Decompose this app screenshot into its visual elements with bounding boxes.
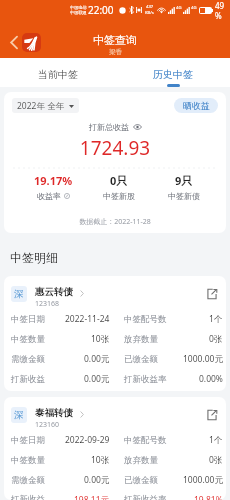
staticText: 0.00% bbox=[199, 373, 223, 385]
staticText: 123160 bbox=[35, 420, 60, 430]
staticText: 中签数量 bbox=[11, 334, 45, 345]
staticText: 中签日期 bbox=[11, 435, 45, 446]
staticText: 打新收益率 bbox=[124, 374, 167, 385]
staticText: 深 bbox=[14, 409, 24, 421]
staticText: 198.11元 bbox=[74, 494, 110, 500]
staticText: 已缴金额 bbox=[124, 475, 158, 486]
staticText: 收益率 bbox=[37, 191, 61, 201]
staticText: 中签新债 bbox=[168, 191, 200, 201]
staticText: 中签新股 bbox=[103, 191, 135, 201]
staticText: 10张 bbox=[91, 454, 110, 466]
staticText: 0.00元 bbox=[84, 373, 110, 385]
staticText: 泰福转债 bbox=[35, 407, 73, 419]
staticText: 需缴金额 bbox=[11, 475, 45, 486]
staticText: 中签数量 bbox=[11, 455, 45, 466]
staticText: 437 bbox=[146, 4, 154, 10]
staticText: 4G bbox=[191, 5, 197, 11]
staticText: KB/s bbox=[145, 10, 154, 16]
button[interactable]: 2022年 全年 bbox=[12, 98, 79, 113]
button[interactable]: 深 bbox=[4, 276, 226, 391]
staticText: 1个 bbox=[209, 434, 223, 446]
button[interactable]: Open detail bbox=[205, 408, 219, 422]
button[interactable]: Back bbox=[5, 34, 22, 51]
staticText: 中签日期 bbox=[11, 314, 45, 325]
staticText: 1000.00元 bbox=[183, 474, 223, 486]
staticText: 4G bbox=[176, 5, 182, 11]
staticText: 2022年 全年 bbox=[17, 100, 65, 112]
staticText: 0张 bbox=[209, 333, 223, 345]
staticText: 打新收益 bbox=[11, 374, 45, 385]
staticText: 49% bbox=[215, 0, 226, 20]
staticText: 19.17% bbox=[34, 173, 73, 188]
staticText: 0.00元 bbox=[84, 474, 110, 486]
staticText: 数据截止：2022-11-28 bbox=[4, 217, 226, 227]
staticText: 22:00 bbox=[88, 3, 114, 17]
button[interactable]: Open detail bbox=[205, 287, 219, 301]
staticText: 2022-11-24 bbox=[65, 313, 110, 325]
staticText: 打新收益 bbox=[11, 494, 45, 500]
staticText: 中国电信 bbox=[70, 5, 87, 10]
staticText: 梁香 bbox=[109, 48, 122, 56]
staticText: 0.00元 bbox=[84, 353, 110, 365]
staticText: 2022-09-29 bbox=[65, 434, 110, 446]
staticText: 打新收益率 bbox=[124, 494, 167, 500]
staticText: 中签配号数 bbox=[124, 314, 167, 325]
button[interactable]: 历史中签 bbox=[115, 58, 230, 87]
staticText: 打新总收益 bbox=[89, 122, 129, 132]
staticText: 当前中签 bbox=[38, 68, 78, 81]
staticText: 9只 bbox=[175, 173, 193, 188]
staticText: 历史中签 bbox=[153, 68, 193, 81]
staticText: 中国联通 bbox=[70, 10, 87, 15]
staticText: 深 bbox=[14, 288, 24, 300]
staticText: 晒收益 bbox=[183, 100, 210, 111]
staticText: 已缴金额 bbox=[124, 354, 158, 365]
staticText: 惠云转债 bbox=[35, 286, 73, 298]
staticText: 1个 bbox=[209, 313, 223, 325]
staticText: 放弃数量 bbox=[124, 455, 158, 466]
staticText: 19.81% bbox=[194, 494, 223, 500]
staticText: 123168 bbox=[35, 299, 60, 309]
staticText: 中签查询 bbox=[93, 33, 137, 47]
button[interactable]: 深 bbox=[4, 397, 226, 500]
button[interactable]: App logo bbox=[22, 33, 41, 52]
button[interactable]: 当前中签 bbox=[0, 58, 115, 87]
staticText: 0只 bbox=[110, 173, 128, 188]
staticText: 中签明细 bbox=[10, 250, 58, 265]
staticText: 10张 bbox=[91, 333, 110, 345]
staticText: 中签配号数 bbox=[124, 435, 167, 446]
staticText: 0张 bbox=[209, 454, 223, 466]
staticText: 需缴金额 bbox=[11, 354, 45, 365]
button[interactable]: 晒收益 bbox=[174, 98, 218, 113]
staticText: 1000.00元 bbox=[183, 353, 223, 365]
staticText: 1724.93 bbox=[4, 135, 226, 161]
staticText: 放弃数量 bbox=[124, 334, 158, 345]
